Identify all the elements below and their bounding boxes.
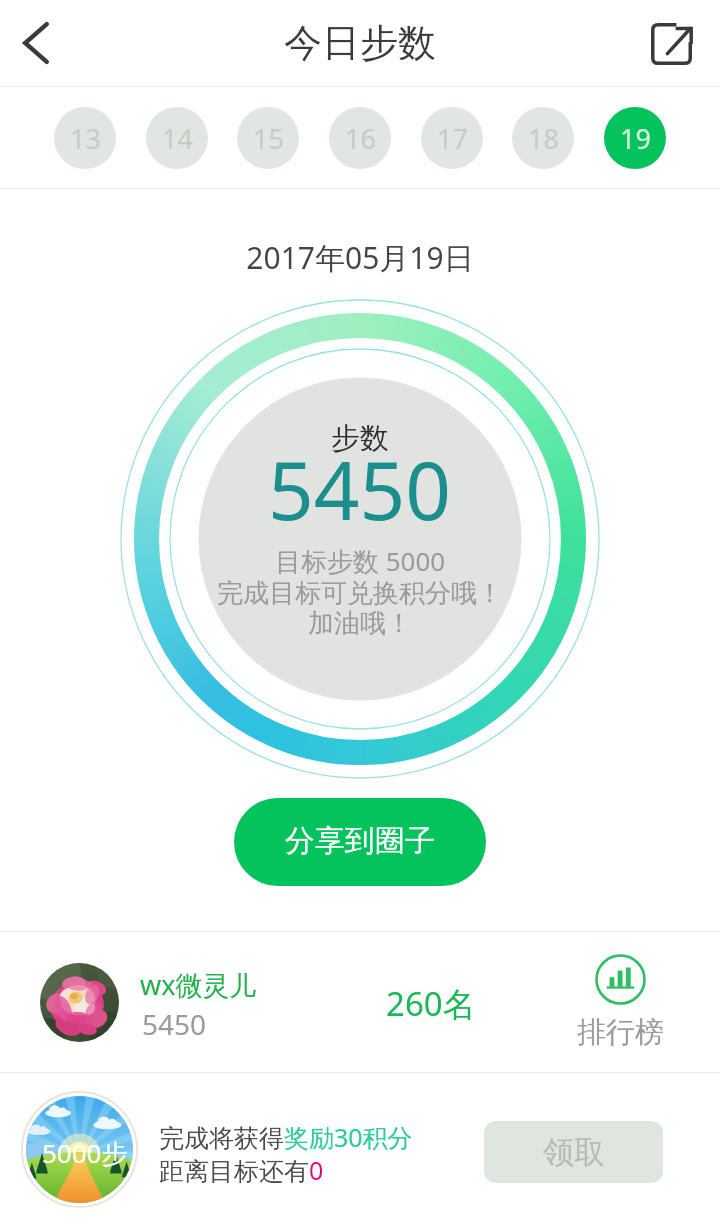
button[interactable]: 排行榜 [570, 954, 670, 1051]
staticText: 5000步 [42, 1135, 128, 1171]
button[interactable]: 14 [146, 107, 208, 169]
button[interactable]: 19 [604, 107, 666, 169]
staticText: 18 [528, 120, 559, 157]
button[interactable]: 16 [329, 107, 391, 169]
button[interactable]: 17 [421, 107, 483, 169]
button[interactable]: Share [635, 1, 707, 87]
staticText: 领取 [543, 1133, 605, 1172]
staticText: 排行榜 [577, 1014, 664, 1051]
staticText: 13 [70, 120, 101, 157]
button[interactable]: 13 [54, 107, 116, 169]
staticText: 目标步数 5000 完成目标可兑换积分哦！ 加油哦！ [217, 543, 503, 639]
button[interactable]: 分享到圈子 [234, 798, 486, 886]
button[interactable]: 15 [237, 107, 299, 169]
staticText: 260名 [386, 981, 476, 1026]
staticText: 今日步数 [284, 19, 436, 67]
staticText: 17 [437, 120, 468, 157]
staticText: 19 [620, 120, 651, 157]
staticText: 16 [345, 120, 376, 157]
staticText: 步数 [331, 420, 389, 457]
staticText: 分享到圈子 [285, 822, 435, 860]
button[interactable]: Back [0, 0, 72, 86]
button[interactable]: wx微灵儿 [0, 932, 720, 1072]
staticText: 5450 [268, 434, 452, 543]
staticText: 14 [162, 120, 193, 157]
button[interactable]: 领取 [484, 1121, 663, 1183]
staticText: wx微灵儿 [140, 966, 257, 1003]
button[interactable]: 18 [512, 107, 574, 169]
staticText: 15 [253, 120, 284, 157]
staticText: 2017年05月19日 [0, 237, 720, 278]
staticText: 完成将获得奖励30积分 距离目标还有0 [159, 1120, 413, 1187]
staticText: 5450 [142, 1005, 207, 1043]
